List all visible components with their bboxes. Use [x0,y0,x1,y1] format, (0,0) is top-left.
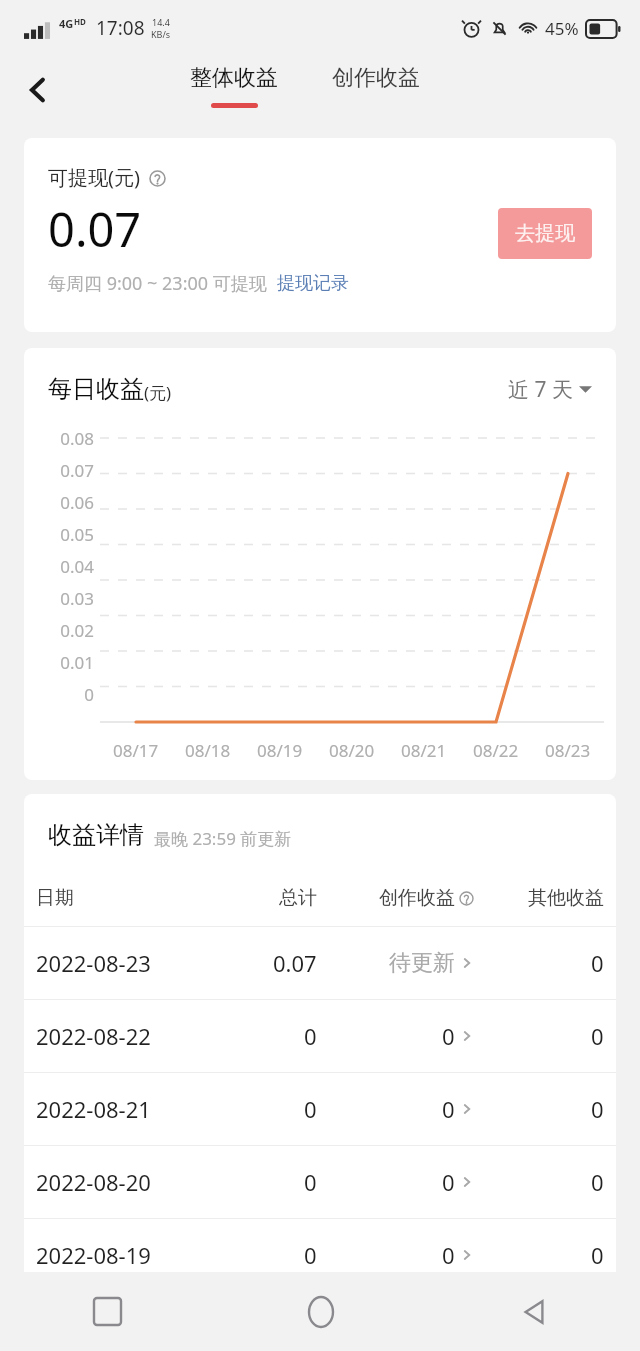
staticText: 45% [545,17,579,40]
button[interactable]: Home [214,1272,427,1351]
staticText: 0.06 [60,491,94,514]
staticText: 14.4 [152,16,170,28]
staticText: 0 [304,1021,317,1051]
staticText: 0 [591,1167,604,1197]
staticText: (元) [144,381,172,404]
button[interactable]: 整体收益 [186,64,282,108]
staticText: 08/20 [329,739,375,762]
staticText: 0 [304,1167,317,1197]
staticText: 2022-08-23 [36,948,151,978]
staticText: 2022-08-22 [36,1021,151,1051]
staticText: 每周四 9:00 ~ 23:00 可提现 [48,271,267,296]
staticText: 每日收益 [48,374,144,404]
staticText: 可提现(元) [48,164,140,191]
staticText: 日期 [36,886,74,910]
staticText: 08/21 [401,739,447,762]
staticText: 0.02 [60,619,94,642]
staticText: 0 [591,948,604,978]
staticText: 收益详情 [48,820,144,850]
button[interactable]: Back [10,62,66,118]
staticText: 2022-08-19 [36,1240,151,1270]
staticText: 0 [84,683,94,706]
staticText: 整体收益 [190,64,278,92]
staticText: 17:08 [96,15,145,41]
staticText: 08/17 [113,739,159,762]
staticText: 创作收益 [332,64,420,92]
button[interactable]: 2022-08-21 [24,1073,616,1146]
staticText: 0 [442,1167,455,1197]
staticText: HD [74,16,86,27]
staticText: 0.07 [60,459,94,482]
button[interactable]: Back [427,1272,640,1351]
staticText: 待更新 [389,949,455,977]
staticText: 2022-08-21 [36,1094,151,1124]
staticText: 总计 [279,886,317,910]
button[interactable]: Recents [0,1272,214,1351]
staticText: 0 [591,1240,604,1270]
button[interactable]: 近 7 天 [508,375,592,404]
staticText: 0.05 [60,523,94,546]
staticText: 08/18 [185,739,231,762]
button[interactable]: 去提现 [498,208,592,259]
staticText: 08/19 [257,739,303,762]
staticText: 0 [442,1094,455,1124]
staticText: 0.07 [273,948,317,978]
staticText: 去提现 [515,221,575,246]
staticText: 近 7 天 [508,375,573,404]
button[interactable]: 2022-08-23 [24,927,616,1000]
staticText: 0.08 [60,427,94,450]
staticText: 其他收益 [528,886,604,910]
staticText: 0.03 [60,587,94,610]
button[interactable]: 创作收益 [328,64,424,92]
staticText: 0 [304,1240,317,1270]
button[interactable]: 提现记录 [277,272,349,295]
staticText: 0.01 [60,651,94,674]
button[interactable]: 2022-08-19 [24,1219,616,1292]
staticText: 08/22 [473,739,519,762]
staticText: 0 [442,1021,455,1051]
staticText: 08/23 [545,739,591,762]
staticText: 0 [591,1021,604,1051]
staticText: 0 [304,1094,317,1124]
button[interactable]: 2022-08-20 [24,1146,616,1219]
staticText: 0.07 [48,197,142,261]
staticText: 提现记录 [277,272,349,295]
button[interactable]: Help [147,168,167,188]
staticText: 0 [442,1240,455,1270]
staticText: 0.04 [60,555,94,578]
staticText: 0 [591,1094,604,1124]
staticText: 最晚 23:59 前更新 [154,827,292,850]
staticText: 4G [59,16,74,31]
staticText: KB/s [151,28,171,40]
staticText: 创作收益 [379,886,455,910]
button[interactable]: 2022-08-22 [24,1000,616,1073]
staticText: 2022-08-20 [36,1167,151,1197]
